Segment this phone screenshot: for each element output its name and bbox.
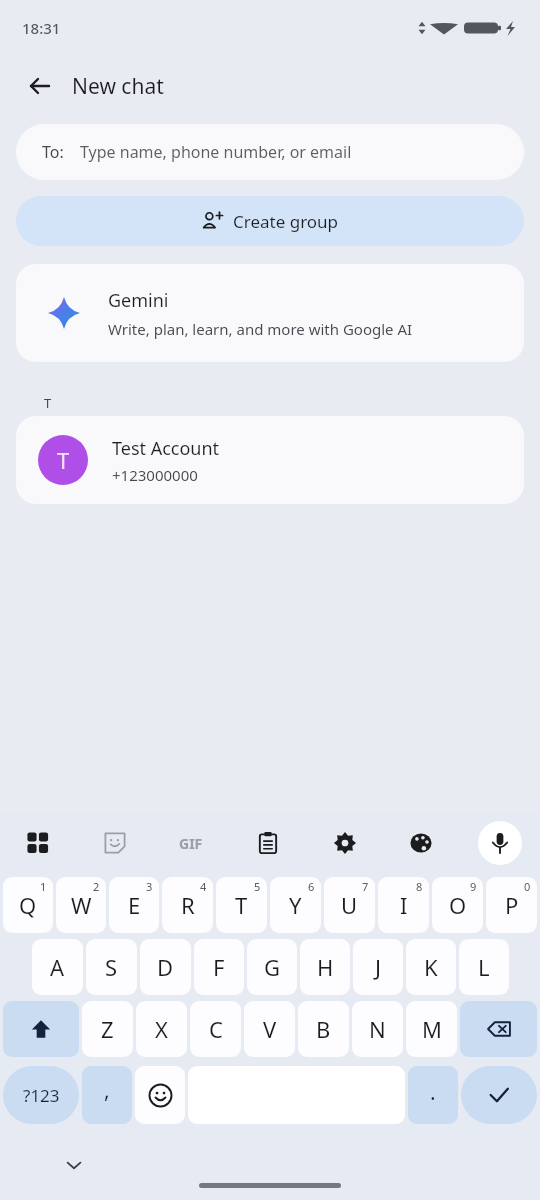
staticText: 5 xyxy=(254,879,261,894)
staticText: F xyxy=(213,952,225,982)
button[interactable]: Back xyxy=(18,64,62,108)
staticText: Test Account xyxy=(112,436,220,461)
staticText: 6 xyxy=(308,879,315,894)
button[interactable]: Enter xyxy=(461,1066,537,1124)
staticText: Q xyxy=(19,890,37,920)
button[interactable]: D xyxy=(140,939,191,995)
staticText: K xyxy=(424,952,438,982)
button[interactable]: Gemini xyxy=(16,264,524,362)
staticText: 8 xyxy=(416,879,423,894)
button[interactable]: P xyxy=(486,877,537,933)
button[interactable]: E xyxy=(109,877,159,933)
staticText: I xyxy=(400,890,408,920)
staticText: T xyxy=(235,890,248,920)
staticText: , xyxy=(104,1076,110,1105)
button[interactable]: Settings xyxy=(325,823,365,863)
staticText: Z xyxy=(101,1014,114,1044)
button[interactable]: Apps xyxy=(18,823,58,863)
button[interactable]: V xyxy=(244,1001,295,1057)
staticText: Type name, phone number, or email xyxy=(80,141,352,163)
staticText: L xyxy=(478,952,490,982)
staticText: Write, plan, learn, and more with Google… xyxy=(108,319,413,339)
staticText: 2 xyxy=(93,879,100,894)
staticText: P xyxy=(505,890,519,920)
button[interactable]: A xyxy=(32,939,83,995)
button[interactable]: To: xyxy=(16,124,524,180)
button[interactable]: M xyxy=(406,1001,457,1057)
button[interactable]: Backspace xyxy=(460,1001,537,1057)
button[interactable]: Y xyxy=(270,877,321,933)
staticText: To: xyxy=(42,141,64,163)
button[interactable]: T xyxy=(216,877,267,933)
staticText: New chat xyxy=(72,72,164,101)
staticText: T xyxy=(57,445,70,475)
staticText: O xyxy=(449,890,467,920)
staticText: 0 xyxy=(524,879,531,894)
button[interactable]: O xyxy=(432,877,483,933)
button[interactable]: X xyxy=(136,1001,187,1057)
staticText: G xyxy=(264,952,281,982)
staticText: N xyxy=(369,1014,386,1044)
staticText: 18:31 xyxy=(22,18,61,38)
staticText: S xyxy=(105,952,118,982)
staticText: X xyxy=(155,1014,168,1044)
staticText: A xyxy=(50,952,65,982)
button[interactable]: ?123 xyxy=(3,1066,79,1124)
staticText: ?123 xyxy=(23,1084,60,1107)
staticText: 1 xyxy=(40,879,47,894)
staticText: C xyxy=(209,1014,223,1044)
button[interactable]: Z xyxy=(82,1001,133,1057)
button[interactable]: Create group xyxy=(16,196,524,246)
staticText: J xyxy=(375,952,382,982)
staticText: H xyxy=(317,952,334,982)
staticText: 3 xyxy=(146,879,153,894)
button[interactable]: T xyxy=(16,416,524,504)
staticText: . xyxy=(430,1078,436,1107)
button[interactable]: L xyxy=(459,939,509,995)
button[interactable]: Voice input xyxy=(478,821,522,865)
staticText: V xyxy=(263,1014,277,1044)
button[interactable]: U xyxy=(324,877,375,933)
button[interactable]: . xyxy=(408,1066,458,1124)
button[interactable]: Q xyxy=(3,877,53,933)
button[interactable]: K xyxy=(406,939,456,995)
staticText: +123000000 xyxy=(112,465,198,485)
button[interactable]: Themes xyxy=(401,823,441,863)
button[interactable]: F xyxy=(194,939,244,995)
button[interactable]: G xyxy=(247,939,297,995)
button[interactable]: R xyxy=(162,877,213,933)
button[interactable]: B xyxy=(298,1001,349,1057)
button[interactable]: Clipboard xyxy=(248,823,288,863)
staticText: Gemini xyxy=(108,288,169,313)
staticText: M xyxy=(422,1014,442,1044)
staticText: GIF xyxy=(179,834,203,853)
button[interactable]: Hide keyboard xyxy=(56,1147,92,1183)
button[interactable]: S xyxy=(86,939,137,995)
button[interactable]: J xyxy=(353,939,403,995)
staticText: 9 xyxy=(470,879,477,894)
button[interactable]: W xyxy=(56,877,106,933)
staticText: U xyxy=(341,890,358,920)
staticText: T xyxy=(44,394,52,412)
staticText: D xyxy=(157,952,174,982)
button[interactable]: H xyxy=(300,939,350,995)
staticText: 7 xyxy=(362,879,369,894)
button[interactable]: Emoji xyxy=(135,1066,185,1124)
staticText: 4 xyxy=(200,879,207,894)
button[interactable]: GIF xyxy=(171,823,211,863)
staticText: B xyxy=(316,1014,331,1044)
button[interactable]: I xyxy=(378,877,429,933)
staticText: Create group xyxy=(233,210,339,233)
button[interactable]: C xyxy=(190,1001,241,1057)
staticText: W xyxy=(71,890,92,920)
button[interactable]: N xyxy=(352,1001,403,1057)
staticText: E xyxy=(128,890,141,920)
button[interactable]: Stickers xyxy=(95,823,135,863)
staticText: Y xyxy=(289,890,302,920)
button[interactable]: , xyxy=(82,1066,132,1124)
staticText: R xyxy=(181,890,195,920)
button[interactable]: Shift xyxy=(3,1001,79,1057)
